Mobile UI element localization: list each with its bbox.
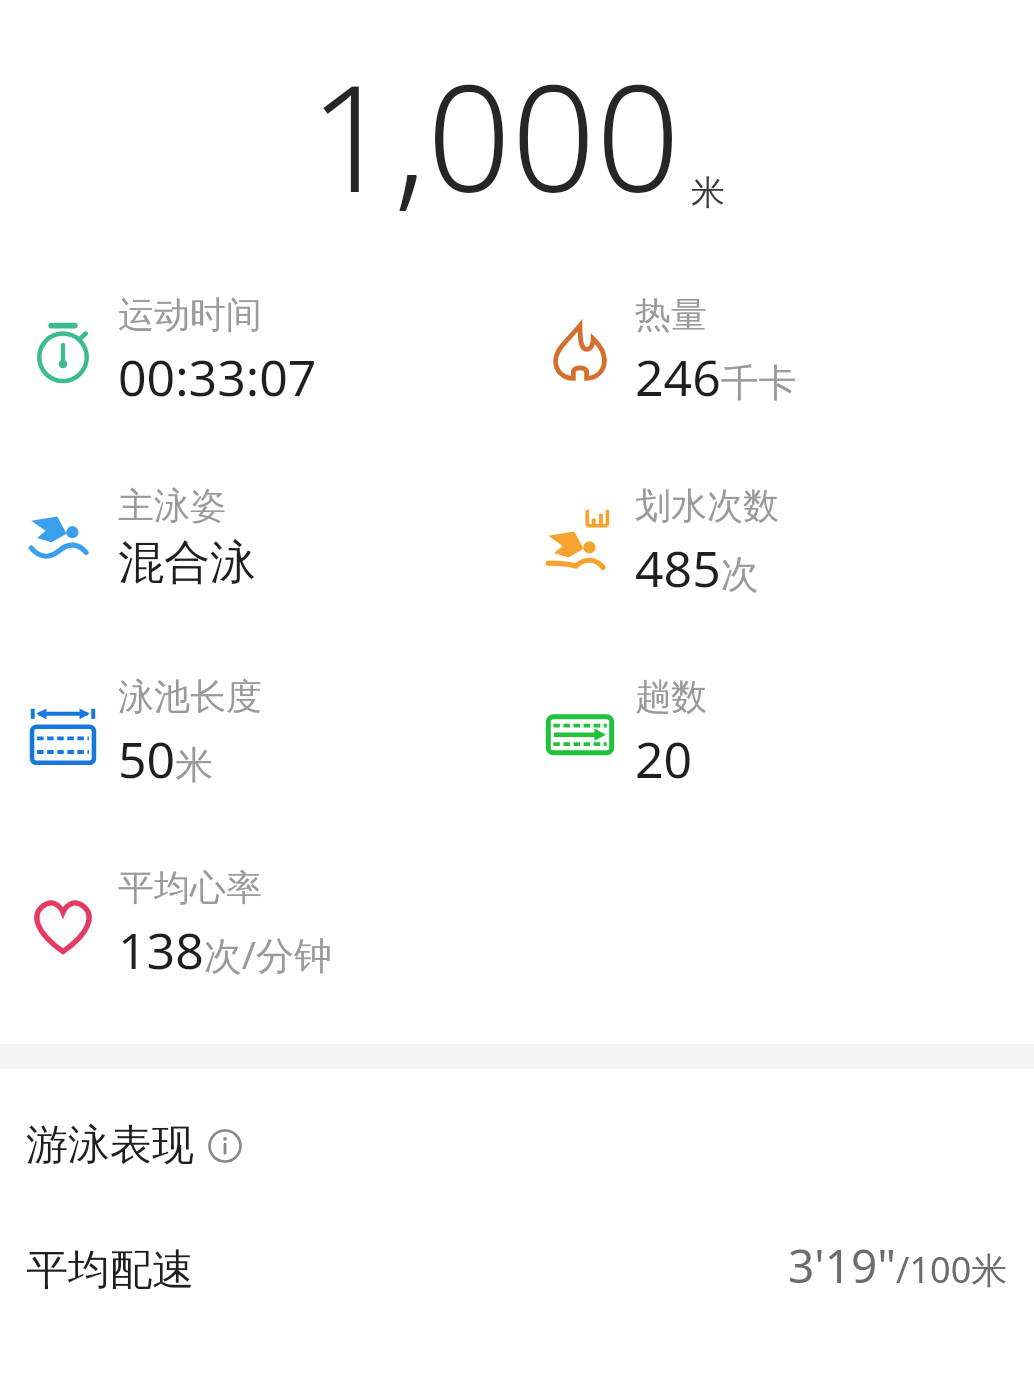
- staticText: 20: [635, 725, 693, 793]
- staticText: 泳池长度: [118, 674, 262, 719]
- staticText: 246千卡: [635, 343, 797, 411]
- other: Laps: [544, 698, 616, 770]
- staticText: 游泳表现: [26, 1119, 194, 1172]
- staticText: 138次/分钟: [118, 916, 332, 984]
- button[interactable]: Laps: [517, 674, 1034, 793]
- other: Duration: [30, 319, 96, 385]
- button[interactable]: Pool length: [0, 674, 517, 793]
- button[interactable]: 游泳表现: [0, 1069, 1034, 1182]
- other: Info: [208, 1129, 242, 1163]
- staticText: 米: [691, 171, 725, 214]
- other: Calories: [547, 319, 613, 385]
- other: Pool length: [27, 698, 99, 770]
- staticText: 趟数: [635, 674, 707, 719]
- staticText: 热量: [635, 292, 707, 337]
- button[interactable]: 平均配速: [0, 1234, 1034, 1297]
- staticText: 混合泳: [118, 534, 256, 592]
- button[interactable]: Swim: [517, 483, 1034, 602]
- button[interactable]: Calories: [517, 292, 1034, 411]
- other: Swim: [544, 507, 616, 579]
- other: Heart rate: [28, 890, 98, 960]
- button[interactable]: Duration: [0, 292, 517, 411]
- staticText: 平均配速: [26, 1244, 194, 1297]
- staticText: 1,000: [309, 34, 681, 236]
- button[interactable]: Swim: [0, 483, 517, 592]
- staticText: 平均心率: [118, 865, 262, 910]
- staticText: 3'19"/100米: [788, 1234, 1008, 1297]
- staticText: 485次: [635, 534, 759, 602]
- staticText: 主泳姿: [118, 483, 226, 528]
- staticText: 划水次数: [635, 483, 779, 528]
- staticText: 50米: [118, 725, 214, 793]
- button[interactable]: Heart rate: [0, 865, 517, 984]
- other: Swim: [27, 502, 99, 574]
- staticText: 运动时间: [118, 292, 262, 337]
- staticText: 00:33:07: [118, 343, 317, 411]
